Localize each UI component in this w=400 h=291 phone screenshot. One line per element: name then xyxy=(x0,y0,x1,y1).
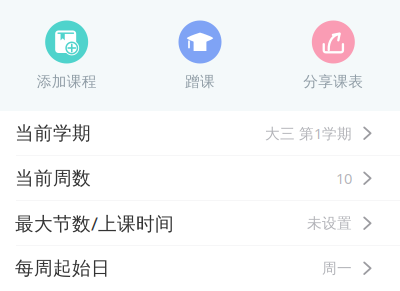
staticText: 每周起始日 xyxy=(15,257,110,280)
staticText: 添加课程 xyxy=(37,72,97,90)
staticText: 周一 xyxy=(322,259,352,277)
button[interactable]: 分享课表 xyxy=(267,20,400,90)
staticText: 当前学期 xyxy=(15,122,91,145)
staticText: 最大节数/上课时间 xyxy=(15,211,174,236)
staticText: 当前周数 xyxy=(15,167,91,190)
staticText: 分享课表 xyxy=(303,72,363,90)
button[interactable]: 蹭课 xyxy=(133,20,267,90)
staticText: 10 xyxy=(336,168,352,188)
button[interactable]: 添加课程 xyxy=(0,20,133,90)
button[interactable]: 每周起始日 xyxy=(0,246,400,290)
staticText: 大三 第1学期 xyxy=(265,123,352,143)
button[interactable]: 当前周数 xyxy=(0,156,400,200)
staticText: 蹭课 xyxy=(185,72,215,90)
staticText: 未设置 xyxy=(307,214,352,232)
button[interactable]: 当前学期 xyxy=(0,111,400,155)
button[interactable]: 最大节数/上课时间 xyxy=(0,201,400,245)
